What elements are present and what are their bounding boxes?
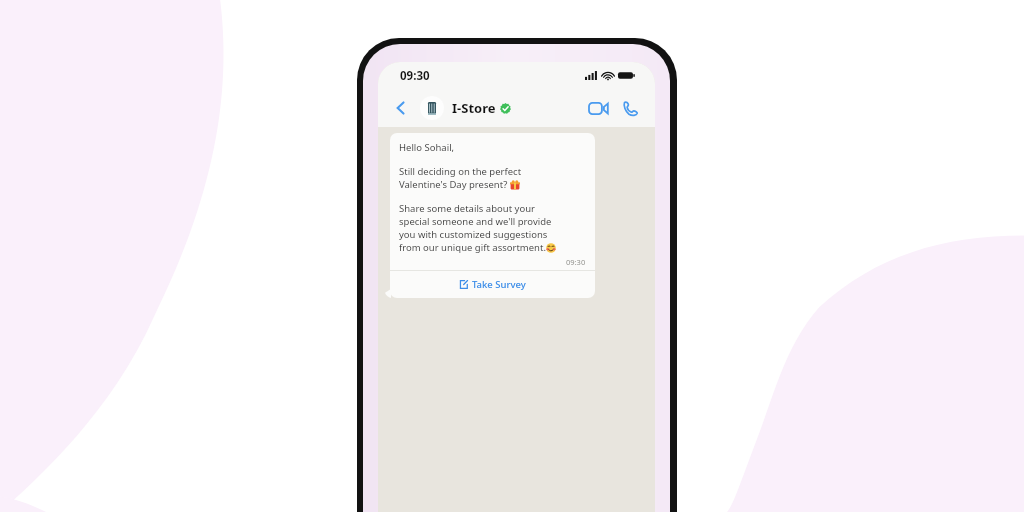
button[interactable]: Hello Sohail,	[390, 133, 595, 270]
button[interactable]: Video call	[585, 95, 611, 121]
button[interactable]: Voice call	[617, 95, 643, 121]
staticText: Take Survey	[472, 278, 526, 291]
button[interactable]: Take Survey	[390, 271, 595, 298]
button[interactable]: Back	[390, 97, 412, 119]
staticText: special someone and we'll provide	[399, 215, 552, 228]
staticText: you with customized suggestions	[399, 228, 548, 241]
staticText: 09:30	[566, 257, 586, 267]
button[interactable]	[420, 96, 444, 120]
staticText: from our unique gift assortment.	[399, 241, 546, 254]
staticText: 09:30	[400, 68, 430, 84]
staticText: Share some details about your	[399, 202, 535, 215]
staticText: I-Store	[452, 99, 496, 117]
staticText: Hello Sohail,	[399, 141, 455, 154]
staticText: Valentine's Day present?	[399, 178, 510, 191]
staticText: Still deciding on the perfect	[399, 165, 522, 178]
button[interactable]: I-Store	[452, 99, 511, 117]
